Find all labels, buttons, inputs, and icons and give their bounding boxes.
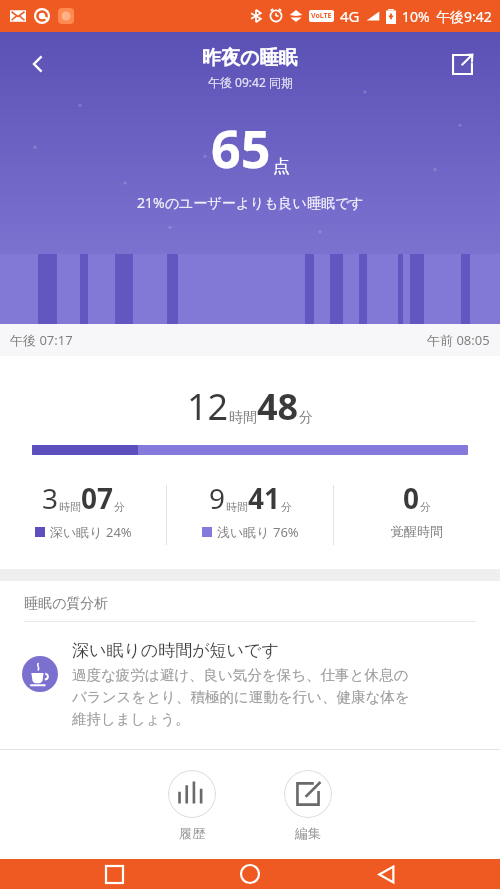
staticText: 覚醒時間 xyxy=(391,523,443,539)
staticText: 65 xyxy=(211,112,271,183)
staticText: VoLTE xyxy=(311,11,332,21)
button[interactable]: 3 xyxy=(0,479,166,541)
staticText: 深い眠りの時間が短いです xyxy=(72,640,279,661)
staticText: 昨夜の睡眠 xyxy=(202,46,298,70)
staticText: 午後9:42 xyxy=(436,7,492,26)
staticText: 睡眠の質分析 xyxy=(24,595,109,613)
button[interactable]: Edit xyxy=(280,766,336,845)
staticText: 午前 08:05 xyxy=(427,331,490,349)
button[interactable]: History xyxy=(164,766,220,845)
staticText: 12 xyxy=(187,382,229,431)
staticText: 9 xyxy=(209,479,226,517)
staticText: 編集 xyxy=(295,825,321,841)
staticText: 時間 xyxy=(226,500,248,514)
staticText: 過度な疲労は避け、良い気分を保ち、仕事と休息の バランスをとり、積極的に運動を行… xyxy=(72,666,410,729)
staticText: 4G xyxy=(340,6,360,26)
staticText: 10% xyxy=(402,7,430,26)
staticText: 分 xyxy=(281,500,292,514)
staticText: 分 xyxy=(299,409,313,427)
button[interactable]: Share xyxy=(438,40,486,88)
staticText: 分 xyxy=(420,500,431,514)
staticText: 浅い眠り 76% xyxy=(217,523,299,541)
button[interactable]: Recents xyxy=(92,859,136,889)
staticText: 21%のユーザーよりも良い睡眠です xyxy=(137,193,364,212)
staticText: 点 xyxy=(273,156,290,177)
staticText: 時間 xyxy=(229,409,257,427)
button[interactable]: Back xyxy=(14,40,62,88)
button[interactable]: Back xyxy=(364,859,408,889)
staticText: 履歴 xyxy=(179,825,205,841)
button[interactable]: 9 xyxy=(167,479,333,541)
staticText: 3 xyxy=(42,479,59,517)
staticText: 48 xyxy=(257,382,299,431)
staticText: 分 xyxy=(114,500,125,514)
button[interactable]: 0 xyxy=(334,479,500,539)
staticText: 0 xyxy=(403,479,420,517)
button[interactable]: 深い眠りの時間が短いです xyxy=(22,640,478,729)
staticText: 深い眠り 24% xyxy=(50,523,132,541)
staticText: 07 xyxy=(81,479,114,517)
staticText: 午後 09:42 同期 xyxy=(208,74,293,90)
staticText: 時間 xyxy=(59,500,81,514)
button[interactable]: Home xyxy=(228,859,272,889)
staticText: 41 xyxy=(248,479,281,517)
staticText: 午後 07:17 xyxy=(10,331,73,349)
